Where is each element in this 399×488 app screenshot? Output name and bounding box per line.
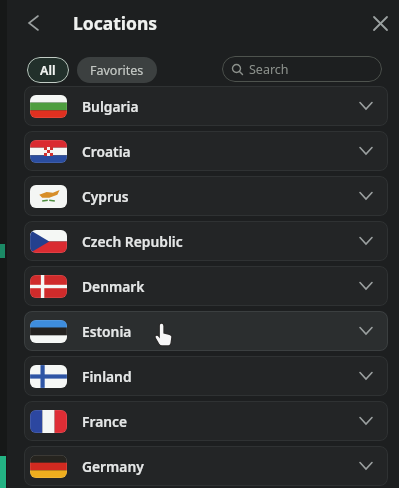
staticText: Search: [249, 61, 289, 78]
staticText: Germany: [82, 457, 144, 476]
staticText: Cyprus: [82, 187, 129, 206]
button[interactable]: [18, 8, 48, 38]
staticText: Denmark: [82, 277, 145, 296]
button[interactable]: Favorites: [77, 57, 157, 83]
staticText: Croatia: [82, 142, 131, 161]
staticText: Estonia: [82, 322, 132, 341]
staticText: Czech Republic: [82, 232, 183, 251]
button[interactable]: France: [24, 401, 388, 441]
staticText: Bulgaria: [82, 97, 139, 116]
button[interactable]: Germany: [24, 446, 388, 486]
button[interactable]: Search: [222, 56, 382, 82]
button[interactable]: [365, 8, 395, 38]
button[interactable]: Cyprus: [24, 176, 388, 216]
staticText: Finland: [82, 367, 132, 386]
button[interactable]: Finland: [24, 356, 388, 396]
staticText: France: [82, 412, 128, 431]
staticText: All: [40, 62, 56, 79]
staticText: Favorites: [90, 62, 144, 79]
button[interactable]: All: [27, 57, 69, 83]
staticText: Locations: [73, 11, 158, 35]
button[interactable]: Estonia: [24, 311, 388, 351]
button[interactable]: Czech Republic: [24, 221, 388, 261]
button[interactable]: Croatia: [24, 131, 388, 171]
button[interactable]: Bulgaria: [24, 86, 388, 126]
button[interactable]: Denmark: [24, 266, 388, 306]
